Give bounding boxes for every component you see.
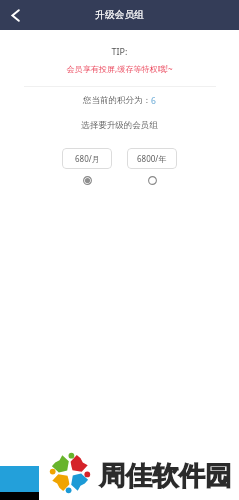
staticText: 会员享有投屏,缓存等特权哦!~: [0, 63, 239, 74]
button[interactable]: 680/月: [81, 174, 93, 186]
staticText: TIP:: [0, 45, 239, 57]
staticText: 周佳软件园: [99, 459, 232, 492]
staticText: 您当前的积分为：: [83, 95, 151, 106]
staticText: 升级会员组: [95, 9, 144, 21]
staticText: 6800/年: [137, 153, 167, 164]
button[interactable]: 6800/年: [127, 148, 177, 169]
staticText: 680/月: [75, 153, 100, 164]
button[interactable]: Back: [0, 0, 30, 30]
button[interactable]: 6800/年: [146, 174, 158, 186]
button[interactable]: 680/月: [62, 148, 112, 169]
staticText: 6: [151, 95, 156, 107]
staticText: 选择要升级的会员组: [0, 120, 239, 131]
